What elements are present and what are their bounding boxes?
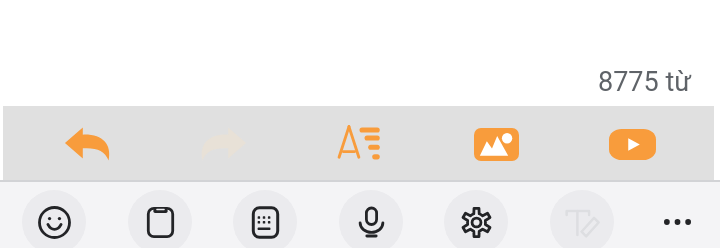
button[interactable]: Undo bbox=[53, 110, 121, 178]
button[interactable]: Text formatting bbox=[326, 110, 394, 178]
button[interactable]: Insert video bbox=[598, 110, 666, 178]
button[interactable]: Emoji bbox=[22, 190, 86, 248]
button[interactable]: Settings bbox=[444, 190, 508, 248]
button[interactable]: Insert image bbox=[462, 110, 530, 178]
staticText: 8775 từ bbox=[598, 66, 691, 98]
button[interactable]: Keyboard bbox=[233, 190, 297, 248]
button[interactable]: Clipboard bbox=[128, 190, 192, 248]
button[interactable]: Handwriting bbox=[550, 190, 614, 248]
button[interactable]: Redo bbox=[189, 110, 257, 178]
button[interactable]: Voice input bbox=[339, 190, 403, 248]
button[interactable]: More options bbox=[645, 190, 709, 248]
